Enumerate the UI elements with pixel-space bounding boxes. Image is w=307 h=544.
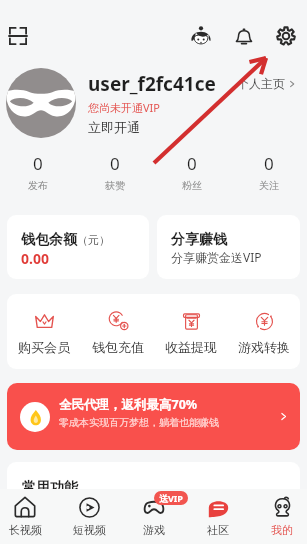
button[interactable]: Avatar	[6, 68, 76, 138]
staticText: 个人主页	[237, 76, 285, 91]
staticText: 游戏转换	[238, 339, 290, 355]
button[interactable]: 个人主页	[234, 73, 299, 94]
button[interactable]: 0	[76, 152, 153, 192]
button[interactable]: 我的	[263, 489, 301, 544]
button[interactable]: Scan	[3, 21, 33, 51]
button[interactable]: 送VIP	[135, 489, 173, 544]
button[interactable]: Settings	[271, 21, 301, 51]
staticText: 收益提现	[165, 339, 217, 355]
staticText: 您尚未开通VIP	[88, 100, 160, 115]
staticText: 钱包充值	[92, 339, 144, 355]
staticText: 购买会员	[18, 339, 70, 355]
button[interactable]: Notifications	[229, 21, 259, 51]
staticText: 送VIP	[159, 492, 183, 504]
staticText: 长视频	[9, 523, 42, 537]
staticText: 0	[264, 152, 274, 175]
staticText: 发布	[28, 179, 48, 192]
button[interactable]: 短视频	[70, 489, 108, 544]
staticText: 零成本实现百万梦想，躺着也能赚钱	[59, 416, 219, 429]
staticText: 0	[110, 152, 120, 175]
staticText: 钱包余额	[21, 231, 77, 249]
staticText: （元）	[77, 233, 110, 247]
button[interactable]: Profile	[186, 21, 216, 51]
button[interactable]: 社区	[199, 489, 237, 544]
staticText: 短视频	[73, 523, 106, 537]
button[interactable]: 0	[0, 152, 76, 192]
button[interactable]: 游戏转换	[227, 294, 300, 369]
staticText: 粉丝	[182, 179, 202, 192]
button[interactable]: 0	[153, 152, 230, 192]
button[interactable]: 长视频	[6, 489, 44, 544]
staticText: 分享赚钱	[171, 231, 227, 249]
button[interactable]: 收益提现	[154, 294, 227, 369]
staticText: 0.00	[21, 249, 49, 268]
staticText: 我的	[271, 523, 293, 537]
button[interactable]: 分享赚钱	[157, 215, 300, 279]
staticText: user_f2fc41ce	[88, 71, 216, 97]
staticText: 游戏	[143, 523, 165, 537]
staticText: 分享赚赏金送VIP	[171, 249, 262, 265]
button[interactable]: 全民代理，返利最高70%	[7, 383, 300, 450]
staticText: 0	[33, 152, 43, 175]
staticText: 获赞	[105, 179, 125, 192]
staticText: 全民代理，返利最高70%	[59, 396, 198, 413]
button[interactable]: 钱包充值	[81, 294, 154, 369]
button[interactable]: 购买会员	[7, 294, 81, 369]
staticText: 关注	[259, 179, 279, 192]
button[interactable]: 钱包余额	[7, 215, 149, 279]
staticText: 立即开通	[88, 119, 140, 135]
staticText: 常用功能	[22, 479, 78, 497]
staticText: 0	[187, 152, 197, 175]
button[interactable]: 0	[230, 152, 307, 192]
staticText: 社区	[207, 523, 229, 537]
